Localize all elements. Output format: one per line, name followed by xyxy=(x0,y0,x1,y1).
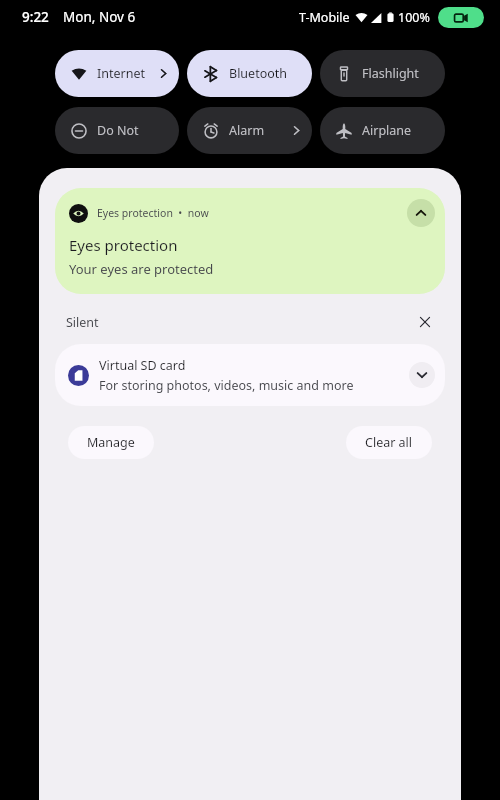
button[interactable]: Internet xyxy=(55,50,179,97)
button[interactable]: Manage xyxy=(68,426,154,459)
staticText: Your eyes are protected xyxy=(69,260,214,278)
button[interactable]: Clear silent notifications xyxy=(413,310,437,334)
staticText: Airplane mo.. xyxy=(362,122,435,139)
button[interactable]: Clear all xyxy=(346,426,432,459)
staticText: Bluetooth xyxy=(229,65,288,82)
staticText: Virtual SD card xyxy=(99,357,186,374)
staticText: Internet xyxy=(97,65,145,82)
staticText: Manage xyxy=(87,434,135,451)
button[interactable]: Expand xyxy=(409,362,435,388)
button[interactable]: Eyes protection • now xyxy=(55,188,445,294)
button[interactable]: Do Not Dist.. xyxy=(55,107,179,154)
staticText: Clear all xyxy=(365,434,413,451)
button[interactable]: Screen recording xyxy=(438,7,484,28)
staticText: Mon, Nov 6 xyxy=(63,8,136,26)
staticText: Eyes protection • now xyxy=(97,206,209,220)
staticText: Eyes protection xyxy=(69,235,178,255)
button[interactable]: Alarm xyxy=(187,107,312,154)
staticText: Do Not Dist.. xyxy=(97,122,169,139)
staticText: Flashlight xyxy=(362,65,419,82)
staticText: T-Mobile xyxy=(299,9,350,26)
staticText: For storing photos, videos, music and mo… xyxy=(99,377,354,394)
staticText: Silent xyxy=(66,314,99,331)
staticText: 9:22 xyxy=(22,8,49,26)
button[interactable]: Collapse xyxy=(407,199,435,227)
button[interactable]: Virtual SD card xyxy=(55,344,445,406)
staticText: 100% xyxy=(398,9,430,26)
button[interactable]: Flashlight xyxy=(320,50,445,97)
button[interactable]: Bluetooth xyxy=(187,50,312,97)
button[interactable]: Airplane mo.. xyxy=(320,107,445,154)
staticText: Alarm xyxy=(229,122,265,139)
